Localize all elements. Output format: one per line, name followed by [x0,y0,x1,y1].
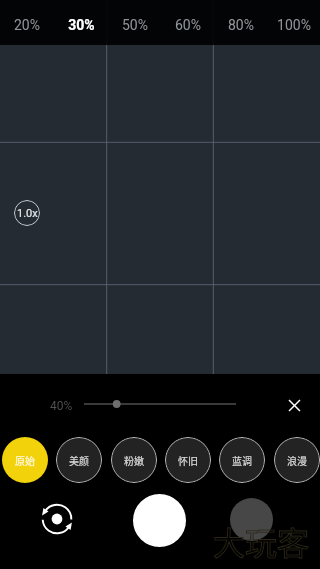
button[interactable]: Intensity slider [84,398,236,410]
button[interactable]: 粉嫩 [111,437,157,483]
staticText: 20% [14,17,40,33]
button[interactable]: 60% [161,0,214,45]
button[interactable]: 蓝调 [219,437,265,483]
button[interactable]: 30% [54,0,108,45]
button[interactable]: 100% [267,0,320,45]
staticText: 大玩客 [213,518,310,564]
button[interactable]: Close [281,392,307,418]
button[interactable]: Shutter [133,494,186,547]
button[interactable]: 1.0x [14,200,40,226]
staticText: 粉嫩 [124,453,144,467]
button[interactable]: 50% [108,0,161,45]
staticText: 30% [68,17,95,33]
staticText: 怀旧 [178,453,198,467]
staticText: 80% [228,17,254,33]
button[interactable]: 美颜 [56,437,102,483]
staticText: 40% [50,399,73,413]
button[interactable]: 怀旧 [165,437,211,483]
staticText: 蓝调 [232,453,252,467]
button[interactable]: 浪漫 [274,437,320,483]
button[interactable]: Gallery [230,498,273,541]
staticText: 50% [122,17,148,33]
staticText: 100% [277,17,311,33]
button[interactable]: 80% [214,0,267,45]
staticText: 美颜 [69,453,89,467]
staticText: 原始 [15,453,35,467]
button[interactable]: Switch camera [42,504,72,534]
staticText: 60% [175,17,201,33]
button[interactable]: 20% [0,0,54,45]
staticText: 浪漫 [287,453,307,467]
staticText: 1.0x [17,207,38,220]
button[interactable]: 原始 [2,437,48,483]
